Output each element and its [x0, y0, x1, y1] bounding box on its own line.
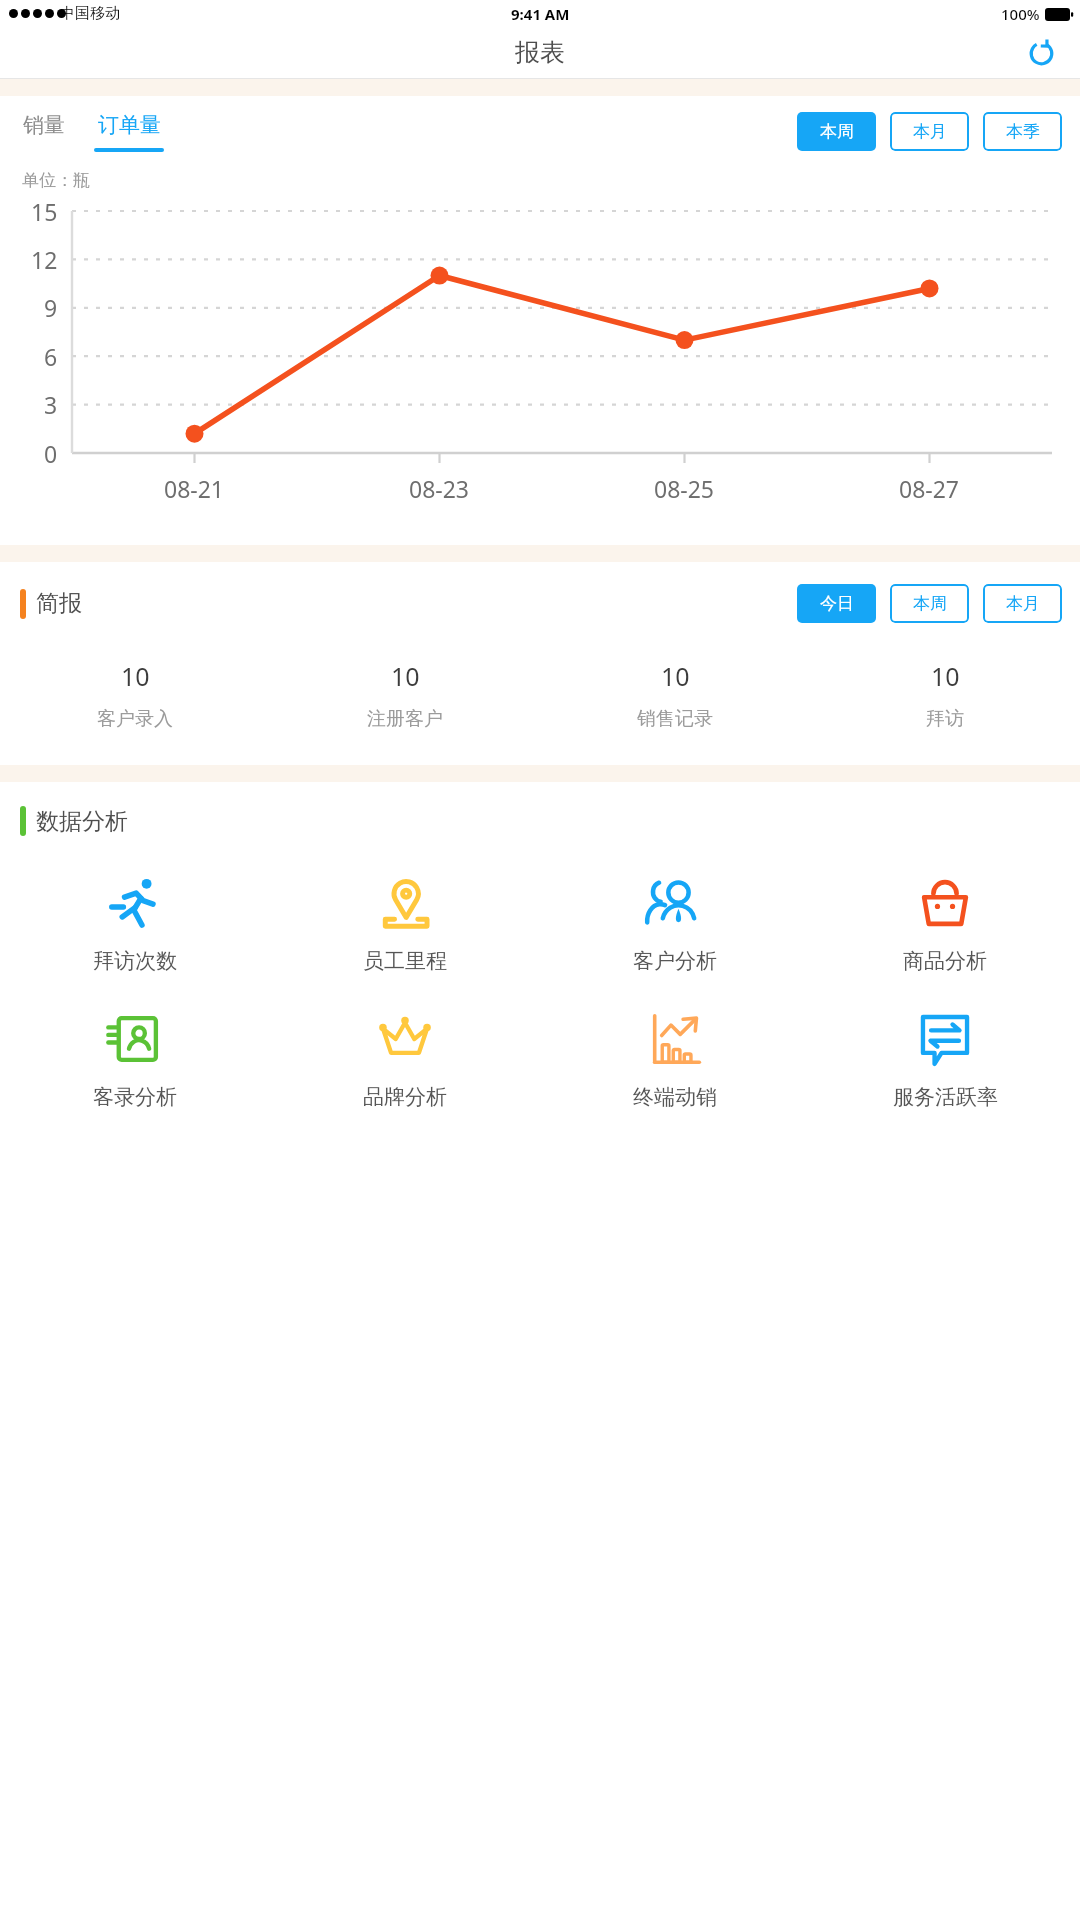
staticText: 08-25	[654, 473, 715, 504]
staticText: 商品分析	[903, 948, 987, 974]
button[interactable]: 今日	[797, 584, 876, 623]
button[interactable]: 10	[0, 659, 270, 731]
staticText: 客户录入	[97, 707, 173, 731]
staticText: 销量	[23, 112, 65, 138]
button[interactable]: 10	[810, 659, 1080, 731]
staticText: 3	[44, 389, 58, 420]
staticText: 品牌分析	[363, 1084, 447, 1110]
button[interactable]: 本周	[890, 584, 969, 623]
staticText: 本周	[820, 121, 854, 142]
staticText: 本月	[1006, 593, 1040, 614]
staticText: 订单量	[98, 112, 161, 138]
staticText: 数据分析	[36, 807, 128, 836]
staticText: 10	[661, 659, 690, 693]
staticText: 拜访次数	[93, 948, 177, 974]
button[interactable]: 本月	[983, 584, 1062, 623]
button[interactable]: 商品分析	[810, 874, 1080, 974]
button[interactable]: 销量	[20, 112, 68, 152]
staticText: 服务活跃率	[893, 1084, 998, 1110]
staticText: 客录分析	[93, 1084, 177, 1110]
button[interactable]: 本周	[797, 112, 876, 151]
staticText: 6	[44, 341, 58, 372]
staticText: 08-27	[899, 473, 960, 504]
staticText: 100%	[1001, 4, 1040, 24]
button[interactable]: 终端动销	[540, 1010, 810, 1110]
button[interactable]: 服务活跃率	[810, 1010, 1080, 1110]
staticText: 12	[31, 244, 58, 275]
button[interactable]: 客户分析	[540, 874, 810, 974]
staticText: 10	[391, 659, 420, 693]
staticText: 注册客户	[367, 707, 443, 731]
staticText: 单位：瓶	[22, 170, 90, 191]
staticText: 10	[121, 659, 150, 693]
button[interactable]: 客录分析	[0, 1010, 270, 1110]
button[interactable]: 品牌分析	[270, 1010, 540, 1110]
button[interactable]: 本月	[890, 112, 969, 151]
staticText: 08-21	[164, 473, 225, 504]
staticText: 终端动销	[633, 1084, 717, 1110]
staticText: 今日	[820, 593, 854, 614]
staticText: 08-23	[409, 473, 470, 504]
staticText: 9	[44, 292, 58, 323]
staticText: 中国移动	[60, 4, 120, 23]
staticText: 员工里程	[363, 948, 447, 974]
staticText: 0	[44, 438, 58, 469]
staticText: 拜访	[926, 707, 964, 731]
staticText: 简报	[36, 589, 82, 618]
button[interactable]: 10	[540, 659, 810, 731]
staticText: 10	[931, 659, 960, 693]
button[interactable]: Refresh	[1018, 30, 1064, 76]
button[interactable]: 10	[270, 659, 540, 731]
staticText: 客户分析	[633, 948, 717, 974]
button[interactable]: 本季	[983, 112, 1062, 151]
button[interactable]: 员工里程	[270, 874, 540, 974]
button[interactable]: 订单量	[94, 112, 164, 152]
button[interactable]: 拜访次数	[0, 874, 270, 974]
staticText: 报表	[515, 37, 565, 68]
staticText: 9:41 AM	[511, 4, 570, 24]
staticText: 销售记录	[637, 707, 713, 731]
staticText: 本季	[1006, 121, 1040, 142]
staticText: 15	[31, 196, 58, 227]
staticText: 本周	[913, 593, 947, 614]
staticText: 本月	[913, 121, 947, 142]
